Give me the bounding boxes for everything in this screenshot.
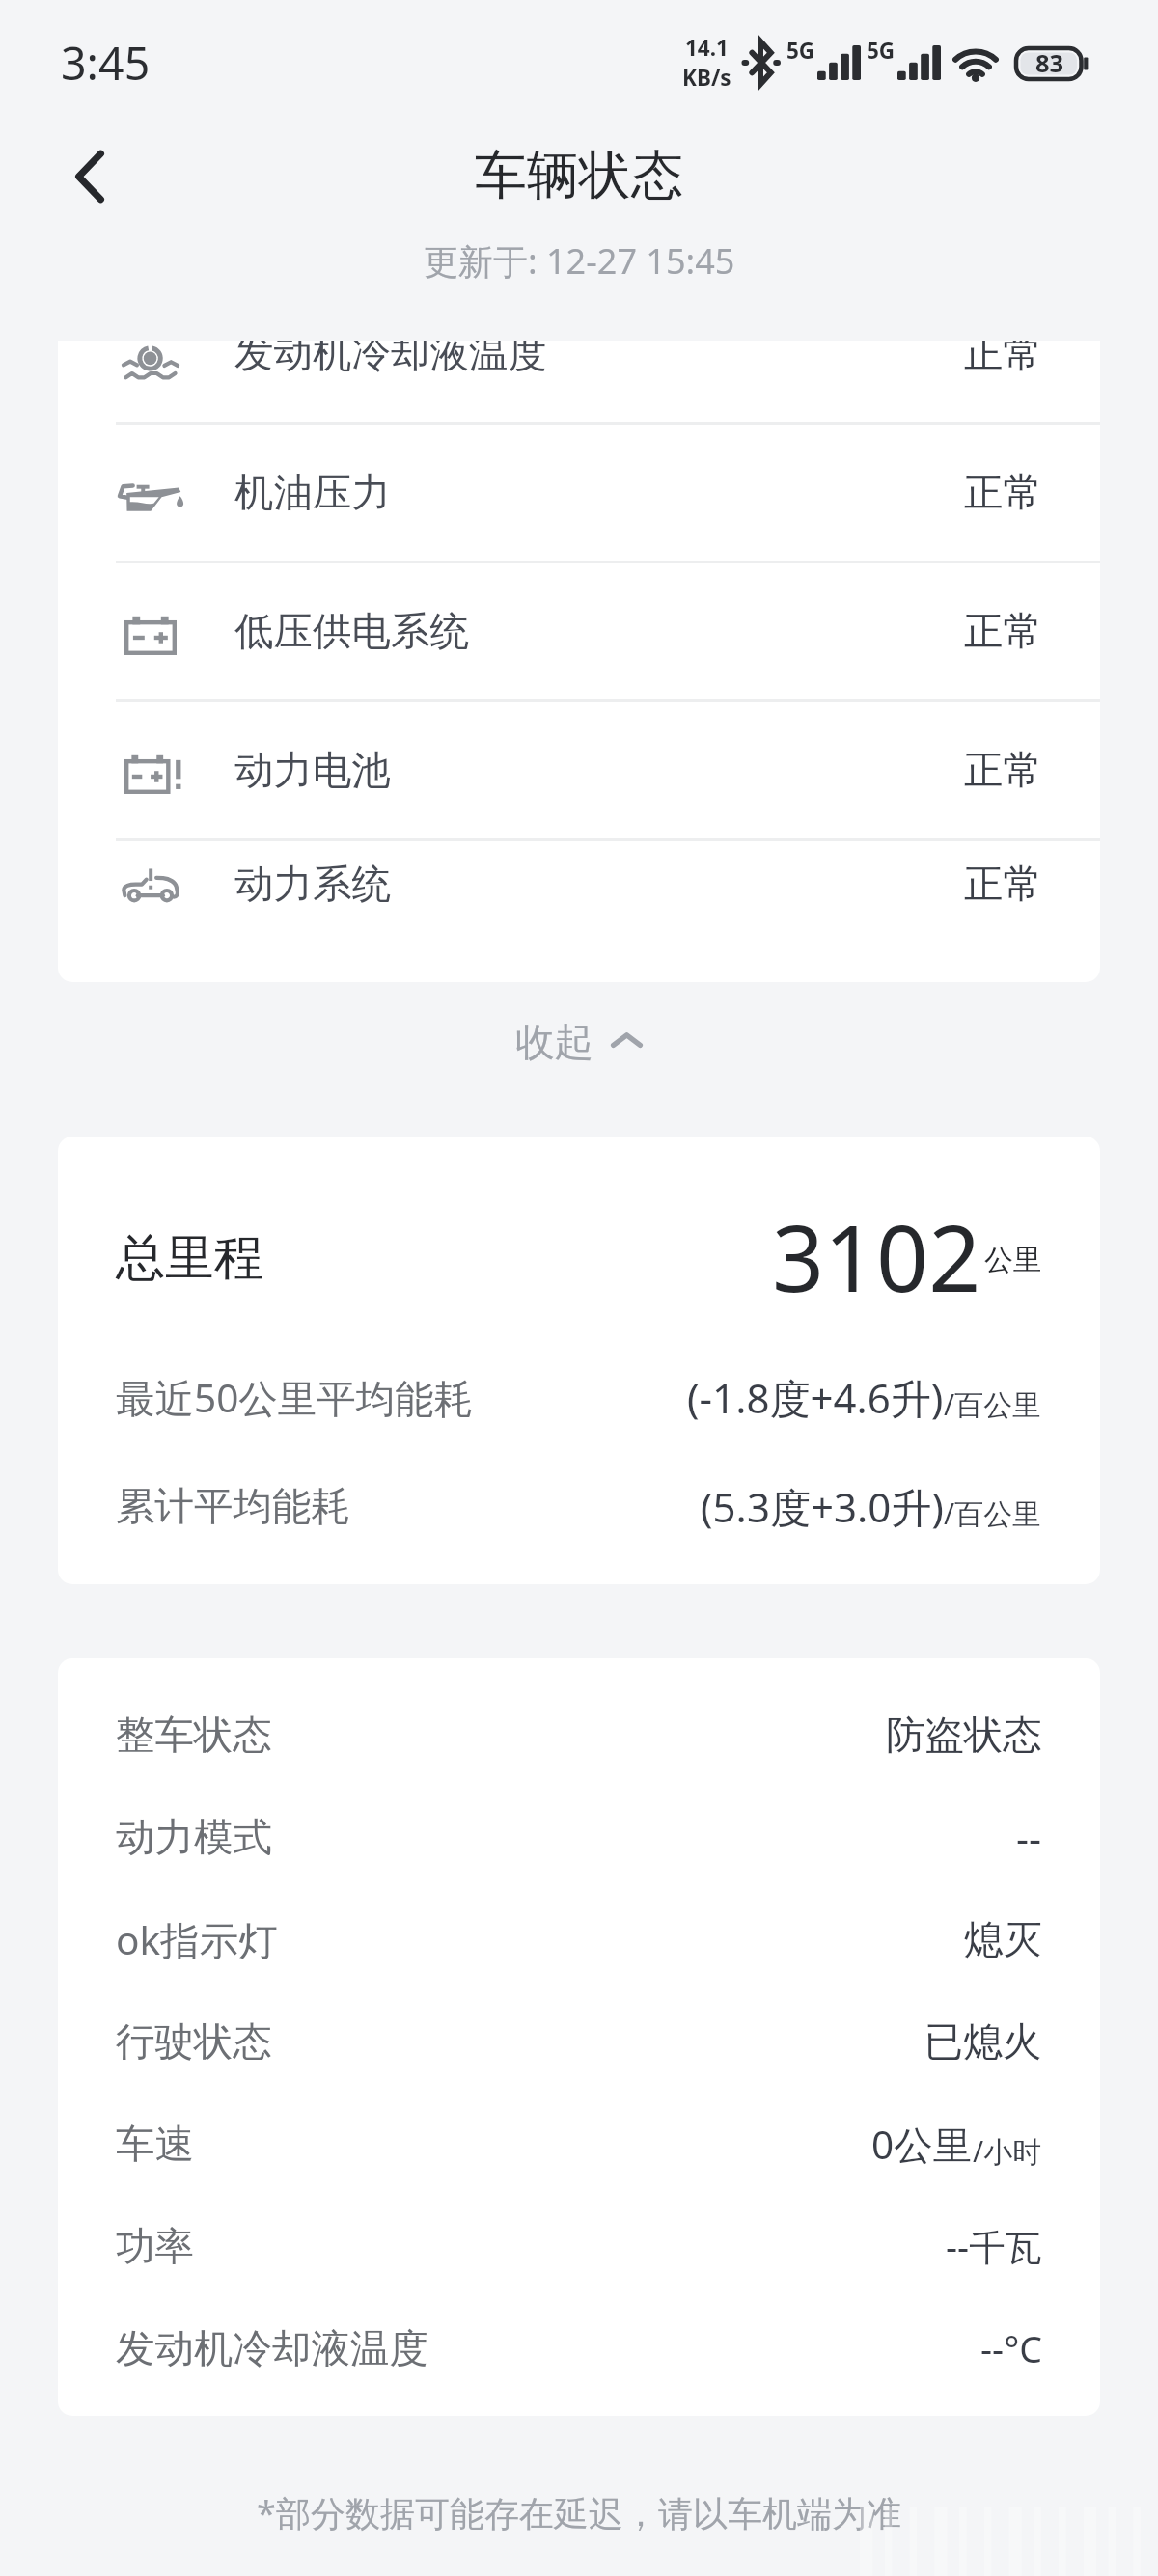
button[interactable]: 动力系统	[58, 841, 1100, 927]
staticText: --	[1016, 1811, 1042, 1864]
staticText: 0公里	[871, 2118, 973, 2171]
staticText: 动力系统	[234, 860, 391, 909]
button[interactable]: 发动机冷却液温度	[58, 341, 1100, 422]
staticText: 车辆状态	[475, 143, 683, 208]
staticText: KB/s	[682, 63, 731, 93]
staticText: 收起	[515, 1018, 593, 1067]
staticText: 正常	[964, 341, 1042, 378]
button[interactable]: 收起	[0, 990, 1158, 1094]
staticText: 累计平均能耗	[116, 1482, 350, 1531]
staticText: 已熄火	[924, 2017, 1042, 2067]
staticText: 正常	[964, 860, 1042, 909]
staticText: --千瓦	[946, 2222, 1042, 2271]
staticText: 3102	[772, 1194, 981, 1299]
staticText: 熄灭	[964, 1915, 1042, 1964]
staticText: (5.3度+3.0升)	[701, 1479, 944, 1534]
staticText: 公里	[984, 1242, 1042, 1278]
staticText: 3:45	[61, 32, 151, 93]
staticText: 14.1	[685, 33, 729, 63]
staticText: 5G	[867, 36, 896, 66]
staticText: /百公里	[944, 1384, 1042, 1424]
staticText: ok指示灯	[116, 1913, 278, 1966]
staticText: 防盗状态	[886, 1711, 1042, 1760]
staticText: *部分数据可能存在延迟，请以车机端为准	[0, 2489, 1158, 2536]
staticText: 更新于: 12-27 15:45	[424, 237, 735, 285]
staticText: 5G	[786, 36, 815, 66]
staticText: 总里程	[116, 1227, 263, 1289]
staticText: 发动机冷却液温度	[116, 2324, 428, 2373]
button[interactable]: 机油压力	[58, 425, 1100, 561]
button[interactable]: 低压供电系统	[58, 563, 1100, 699]
staticText: 低压供电系统	[234, 607, 469, 656]
staticText: 功率	[116, 2222, 194, 2271]
button[interactable]: 动力电池	[58, 702, 1100, 838]
staticText: 车速	[116, 2120, 194, 2169]
staticText: (-1.8度+4.6升)	[687, 1370, 944, 1425]
staticText: 动力模式	[116, 1813, 272, 1862]
button[interactable]: Back	[23, 110, 156, 243]
staticText: 发动机冷却液温度	[234, 341, 547, 378]
staticText: /百公里	[944, 1494, 1042, 1533]
staticText: 最近50公里平均能耗	[116, 1371, 474, 1424]
staticText: 正常	[964, 468, 1042, 517]
staticText: 整车状态	[116, 1711, 272, 1760]
staticText: /小时	[973, 2131, 1042, 2171]
staticText: 正常	[964, 746, 1042, 795]
staticText: 正常	[964, 607, 1042, 656]
staticText: --°C	[980, 2324, 1042, 2373]
staticText: 动力电池	[234, 746, 391, 795]
staticText: 行驶状态	[116, 2017, 272, 2067]
staticText: 83	[1035, 46, 1064, 80]
staticText: 机油压力	[234, 468, 391, 517]
